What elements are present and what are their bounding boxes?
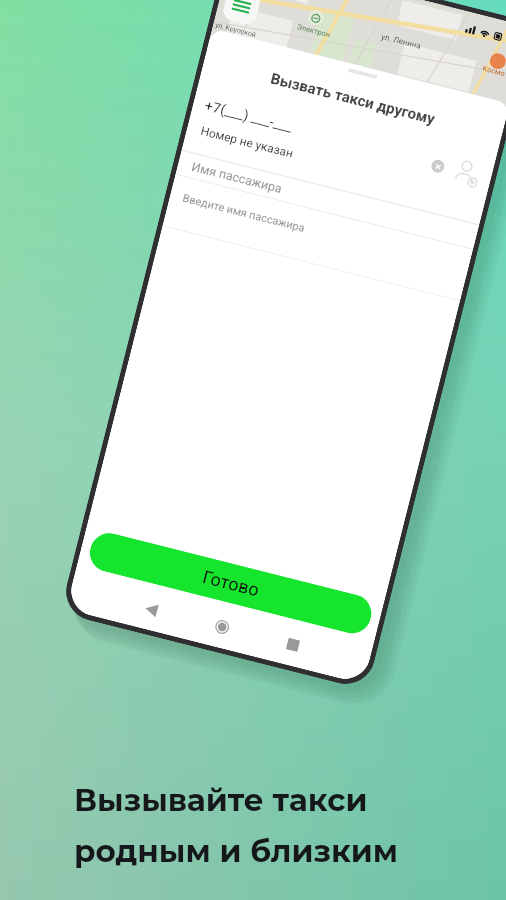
staticText: Номер не указан — [199, 124, 295, 161]
button[interactable]: Back — [144, 602, 159, 617]
button[interactable]: Готово — [86, 529, 376, 637]
staticText: Вызывайте такси — [74, 781, 368, 819]
staticText: ул. Крупской — [214, 21, 257, 39]
staticText: Электрон — [296, 22, 331, 39]
button[interactable]: Clear — [430, 158, 446, 174]
staticText: Имя пассажира — [190, 159, 284, 196]
button[interactable]: Recents — [286, 637, 300, 652]
button[interactable]: Menu — [221, 0, 262, 26]
staticText: Введите имя пассажира — [181, 191, 307, 235]
staticText: ул. Ленина — [380, 32, 422, 51]
staticText: Вызвать такси другому — [202, 53, 504, 145]
staticText: +7(___) ___-___ — [203, 97, 294, 135]
staticText: родным и близким — [74, 832, 399, 870]
button[interactable]: Home — [214, 618, 231, 635]
staticText: Готово — [200, 566, 262, 601]
button[interactable]: Add contact — [451, 156, 485, 190]
staticText: Космо — [482, 64, 506, 78]
